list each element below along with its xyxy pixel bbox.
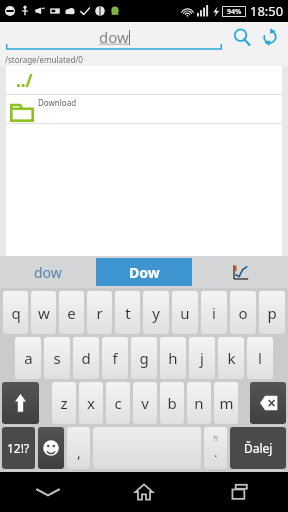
button[interactable]: Space — [93, 427, 201, 469]
staticText: v — [141, 393, 149, 413]
button[interactable]: g — [131, 337, 157, 379]
button[interactable]: w — [31, 291, 56, 334]
staticText: k — [227, 348, 236, 368]
button[interactable]: l — [247, 337, 273, 379]
button[interactable]: j — [189, 337, 215, 379]
button[interactable]: Refresh — [256, 23, 284, 51]
button[interactable]: n — [187, 382, 211, 424]
button[interactable]: o — [230, 291, 256, 334]
staticText: g — [139, 348, 149, 368]
staticText: f — [112, 348, 118, 368]
staticText: . — [214, 443, 218, 461]
staticText: i — [212, 303, 216, 323]
button[interactable]: h — [160, 337, 186, 379]
button[interactable]: Prediction stats — [192, 256, 288, 288]
staticText: j — [200, 348, 204, 368]
button[interactable]: d — [73, 337, 99, 379]
staticText: o — [238, 303, 248, 323]
button[interactable]: z — [52, 382, 76, 424]
button[interactable]: r — [87, 291, 112, 334]
staticText: 12!? — [7, 440, 30, 456]
staticText: b — [167, 393, 177, 413]
button[interactable]: y — [143, 291, 169, 334]
staticText: d — [81, 348, 91, 368]
staticText: , — [77, 443, 81, 462]
button[interactable]: k — [218, 337, 244, 379]
button[interactable]: Search — [228, 23, 256, 51]
button[interactable]: s — [44, 337, 70, 379]
staticText: r — [96, 303, 103, 323]
button[interactable]: Hide keyboard — [0, 472, 96, 512]
staticText: z — [60, 393, 68, 413]
staticText: y — [152, 303, 160, 323]
staticText: x — [87, 393, 95, 413]
staticText: s — [53, 348, 61, 368]
button[interactable]: dow — [0, 256, 96, 288]
staticText: ../ — [16, 69, 33, 92]
button[interactable]: , — [67, 427, 90, 469]
button[interactable]: m — [214, 382, 238, 424]
button[interactable]: q — [3, 291, 28, 334]
staticText: w — [38, 303, 50, 323]
button[interactable]: Home — [96, 472, 192, 512]
button[interactable]: Shift — [2, 382, 39, 424]
button[interactable]: t — [115, 291, 140, 334]
staticText: dow — [34, 263, 62, 282]
button[interactable]: dow — [6, 22, 222, 52]
staticText: u — [180, 303, 190, 323]
staticText: 18:50 — [250, 2, 284, 20]
button[interactable]: Emoji — [38, 427, 64, 469]
button[interactable]: ?! — [204, 427, 227, 469]
button[interactable]: p — [259, 291, 285, 334]
button[interactable]: f — [102, 337, 128, 379]
staticText: l — [258, 348, 262, 368]
staticText: e — [67, 303, 76, 323]
button[interactable]: c — [106, 382, 130, 424]
button[interactable]: Ďalej — [230, 427, 286, 469]
staticText: p — [267, 303, 277, 323]
staticText: ?! — [213, 434, 218, 444]
staticText: Ďalej — [244, 440, 273, 456]
staticText: a — [24, 348, 33, 368]
button[interactable]: ../ — [6, 66, 282, 94]
button[interactable]: b — [160, 382, 184, 424]
staticText: t — [125, 303, 131, 323]
button[interactable]: Recent apps — [192, 472, 288, 512]
staticText: q — [11, 303, 21, 323]
button[interactable]: Dow — [96, 258, 192, 286]
button[interactable]: x — [79, 382, 103, 424]
button[interactable]: e — [59, 291, 84, 334]
staticText: dow — [99, 27, 129, 47]
staticText: Download — [38, 97, 77, 108]
staticText: h — [168, 348, 178, 368]
button[interactable]: v — [133, 382, 157, 424]
staticText: Dow — [129, 263, 160, 282]
staticText: /storage/emulated/0 — [5, 54, 83, 65]
button[interactable]: Download — [6, 95, 282, 123]
button[interactable]: Backspace — [250, 382, 286, 424]
button[interactable]: i — [201, 291, 227, 334]
staticText: 94% — [227, 7, 242, 16]
staticText: m — [219, 393, 234, 413]
button[interactable]: u — [172, 291, 198, 334]
button[interactable]: 12!? — [2, 427, 35, 469]
button[interactable]: a — [15, 337, 41, 379]
staticText: n — [194, 393, 204, 413]
staticText: c — [114, 393, 122, 413]
